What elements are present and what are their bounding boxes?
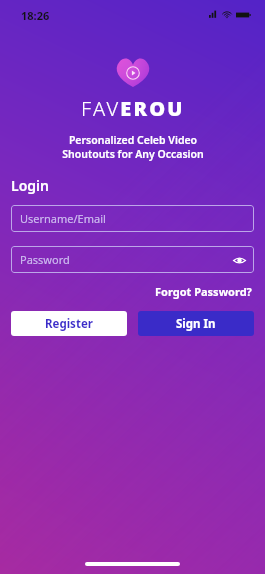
staticText: Register (45, 316, 93, 332)
button[interactable]: Show password (231, 252, 247, 268)
button[interactable]: Password (11, 246, 254, 273)
staticText: Forgot Password? (155, 284, 252, 299)
staticText: 18:26 (21, 8, 50, 23)
staticText: Username/Email (20, 211, 106, 226)
staticText: Personalized Celeb Video Shoutouts for A… (62, 133, 204, 161)
staticText: Password (20, 252, 70, 267)
button[interactable]: Register (11, 311, 127, 336)
staticText: FAVEROU (81, 95, 185, 122)
button[interactable]: Sign In (138, 311, 254, 336)
staticText: Sign In (176, 316, 216, 332)
button[interactable]: Username/Email (11, 205, 254, 232)
button[interactable]: Forgot Password? (153, 282, 254, 301)
staticText: Login (11, 176, 49, 195)
